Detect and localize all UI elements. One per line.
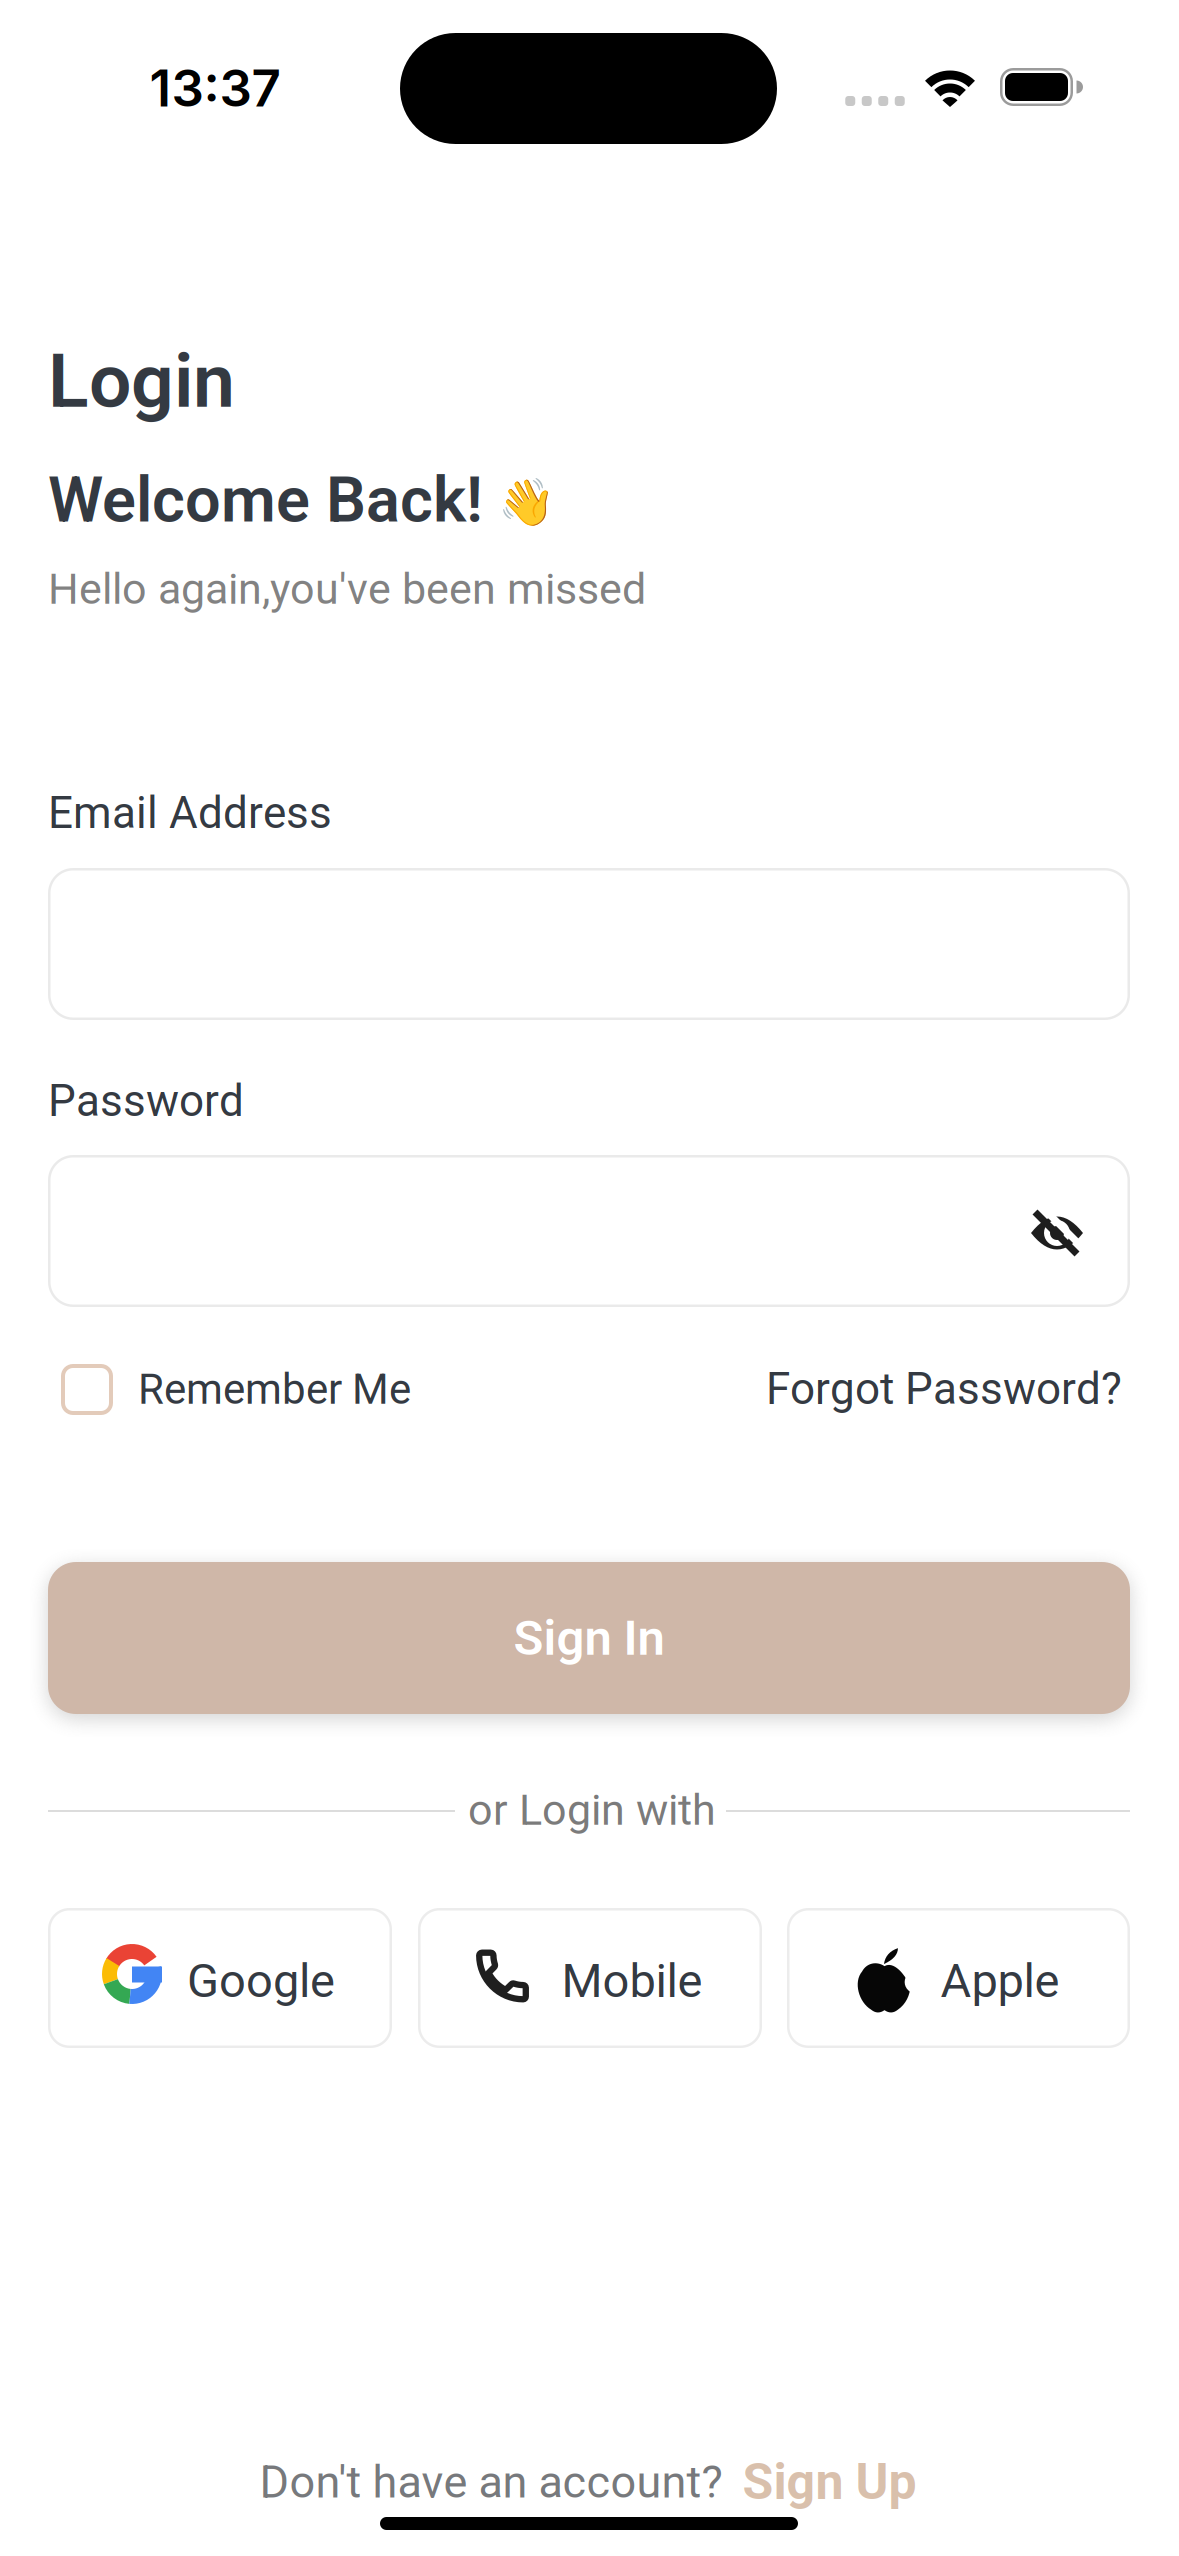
button[interactable]: Forgot Password?: [766, 1363, 1122, 1415]
button[interactable]: Google: [48, 1908, 392, 2048]
button[interactable]: [1031, 1207, 1083, 1259]
staticText: 13:37: [149, 57, 280, 119]
button[interactable]: Don't have an account?: [259, 2453, 916, 2511]
staticText: Password: [48, 1075, 244, 1127]
staticText: 👋: [498, 475, 555, 529]
staticText: Don't have an account?: [259, 2456, 722, 2508]
button[interactable]: [48, 868, 1130, 1020]
staticText: or Login with: [468, 1785, 716, 1835]
button[interactable]: Sign In: [48, 1562, 1130, 1714]
button[interactable]: Apple: [787, 1908, 1130, 2048]
button[interactable]: Mobile: [418, 1908, 762, 2048]
staticText: Google: [187, 1953, 335, 2009]
staticText: Welcome Back!: [48, 463, 483, 537]
staticText: Sign In: [513, 1609, 664, 1667]
staticText: Hello again,you've been missed: [48, 564, 646, 614]
staticText: Remember Me: [138, 1365, 411, 1414]
staticText: Login: [48, 337, 235, 425]
staticText: Email Address: [48, 787, 332, 839]
staticText: Apple: [940, 1953, 1059, 2009]
staticText: Forgot Password?: [766, 1363, 1122, 1415]
staticText: Mobile: [561, 1953, 702, 2009]
button[interactable]: [48, 1155, 1130, 1307]
staticText: Sign Up: [742, 2453, 916, 2511]
button[interactable]: Remember Me: [61, 1364, 411, 1415]
